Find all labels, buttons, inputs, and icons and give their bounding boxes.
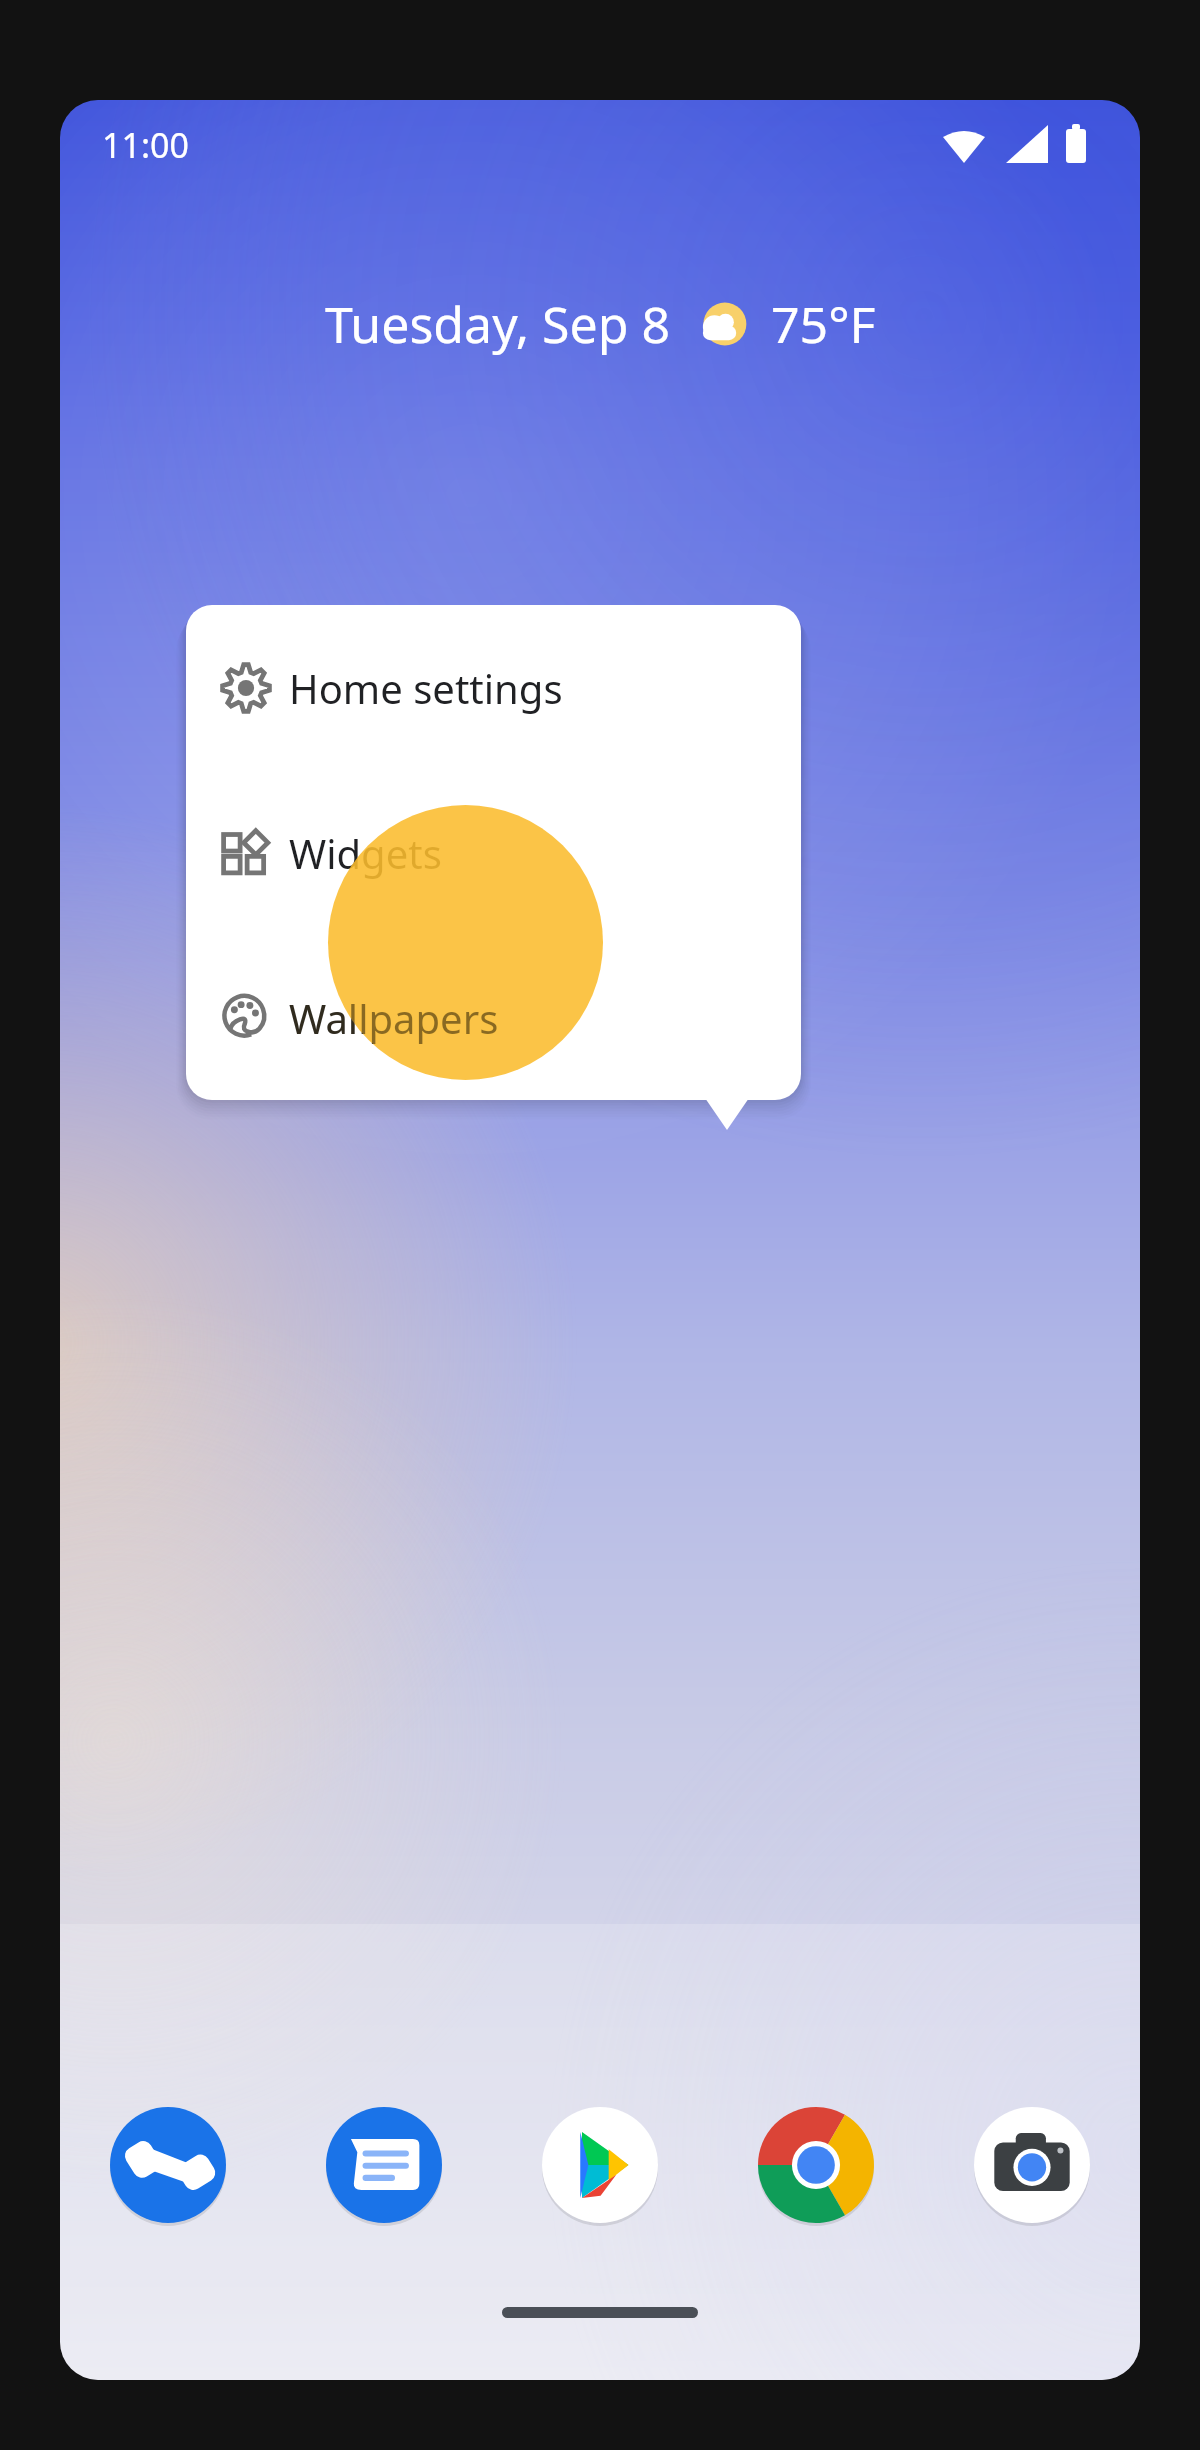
- button[interactable]: Phone: [108, 2105, 228, 2225]
- staticText: Wallpapers: [289, 991, 499, 1045]
- button[interactable]: Tuesday, Sep 8: [60, 290, 1140, 358]
- button[interactable]: Widgets: [186, 770, 801, 935]
- button[interactable]: Home settings: [186, 605, 801, 770]
- button[interactable]: Home: [502, 2307, 698, 2318]
- staticText: Widgets: [289, 826, 442, 880]
- button[interactable]: Play Store: [540, 2105, 660, 2225]
- button[interactable]: Camera: [972, 2105, 1092, 2225]
- button[interactable]: Chrome: [756, 2105, 876, 2225]
- staticText: Home settings: [289, 661, 563, 715]
- button[interactable]: Messages: [324, 2105, 444, 2225]
- staticText: 11:00: [102, 122, 189, 168]
- button[interactable]: Wallpapers: [186, 935, 801, 1100]
- staticText: Wallpapers: [289, 991, 499, 1045]
- staticText: 75°F: [771, 290, 876, 358]
- staticText: Tuesday, Sep 8: [325, 290, 671, 358]
